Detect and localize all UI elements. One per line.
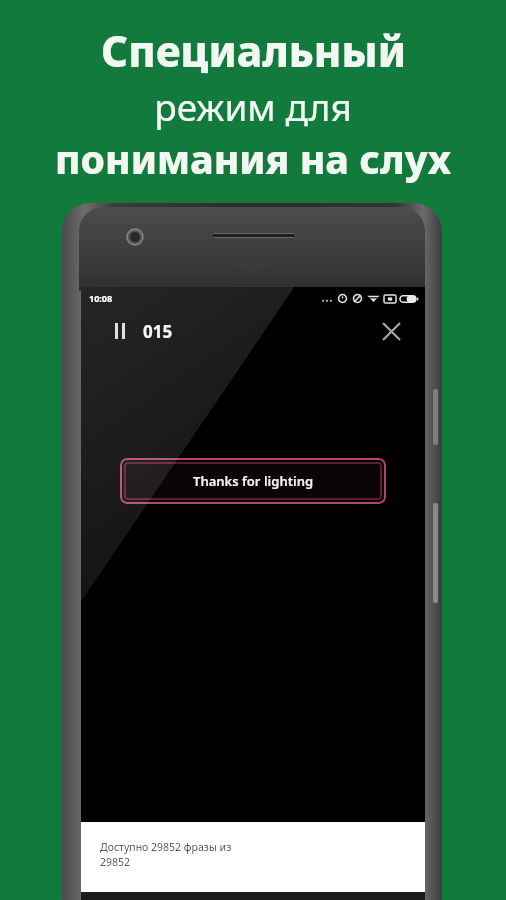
button[interactable]: Доступно 29852 фразы из 29852	[81, 822, 425, 892]
staticText: Thanks for lighting	[193, 472, 314, 490]
staticText: режим для	[154, 81, 352, 131]
staticText: 10:08	[89, 292, 113, 304]
staticText: Специальный	[101, 22, 406, 79]
staticText: 015	[143, 320, 173, 343]
button[interactable]: Thanks for lighting	[124, 462, 382, 500]
staticText: Доступно 29852 фразы из 29852	[100, 840, 232, 869]
staticText: понимания на слух	[55, 132, 451, 185]
button[interactable]: Pause	[107, 318, 133, 344]
button[interactable]: Close	[374, 314, 408, 348]
